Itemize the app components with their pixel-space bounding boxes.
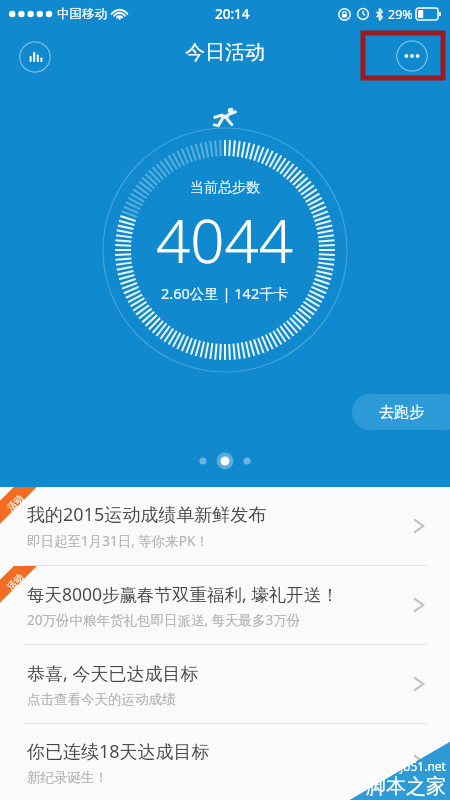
staticText: 今日活动 bbox=[185, 40, 265, 65]
staticText: 29% bbox=[388, 6, 413, 23]
staticText: 当前总步数 bbox=[190, 179, 260, 197]
staticText: 20万份中粮年货礼包即日派送, 每天最多3万份 bbox=[27, 611, 301, 629]
button[interactable]: More options bbox=[396, 40, 428, 72]
button[interactable]: 恭喜, 今天已达成目标 bbox=[0, 645, 450, 723]
staticText: 每天8000步赢春节双重福利, 壕礼开送！ bbox=[27, 582, 339, 606]
staticText: 即日起至1月31日, 等你来PK！ bbox=[27, 532, 209, 550]
button[interactable]: 我的2015运动成绩单新鲜发布 bbox=[0, 487, 450, 565]
staticText: 4044 bbox=[156, 199, 294, 281]
button[interactable]: 去跑步 bbox=[352, 394, 450, 430]
staticText: 活动 bbox=[5, 492, 25, 513]
button[interactable]: 你已连续18天达成目标 bbox=[0, 724, 450, 800]
staticText: 点击查看今天的运动成绩 bbox=[27, 691, 176, 708]
staticText: 去跑步 bbox=[379, 403, 424, 422]
staticText: 你已连续18天达成目标 bbox=[27, 739, 210, 764]
button[interactable]: 每天8000步赢春节双重福利, 壕礼开送！ bbox=[0, 566, 450, 644]
button[interactable]: Statistics bbox=[19, 41, 51, 73]
staticText: 新纪录诞生！ bbox=[27, 769, 108, 786]
staticText: 恭喜, 今天已达成目标 bbox=[27, 661, 199, 686]
staticText: jb51.net bbox=[400, 758, 446, 774]
staticText: 我的2015运动成绩单新鲜发布 bbox=[27, 502, 267, 527]
staticText: 2.60公里 | 142千卡 bbox=[161, 283, 289, 303]
staticText: 中国移动 bbox=[57, 6, 107, 22]
staticText: 活动 bbox=[5, 571, 25, 592]
staticText: 脚本之家 bbox=[366, 774, 446, 799]
staticText: 20:14 bbox=[215, 5, 250, 23]
